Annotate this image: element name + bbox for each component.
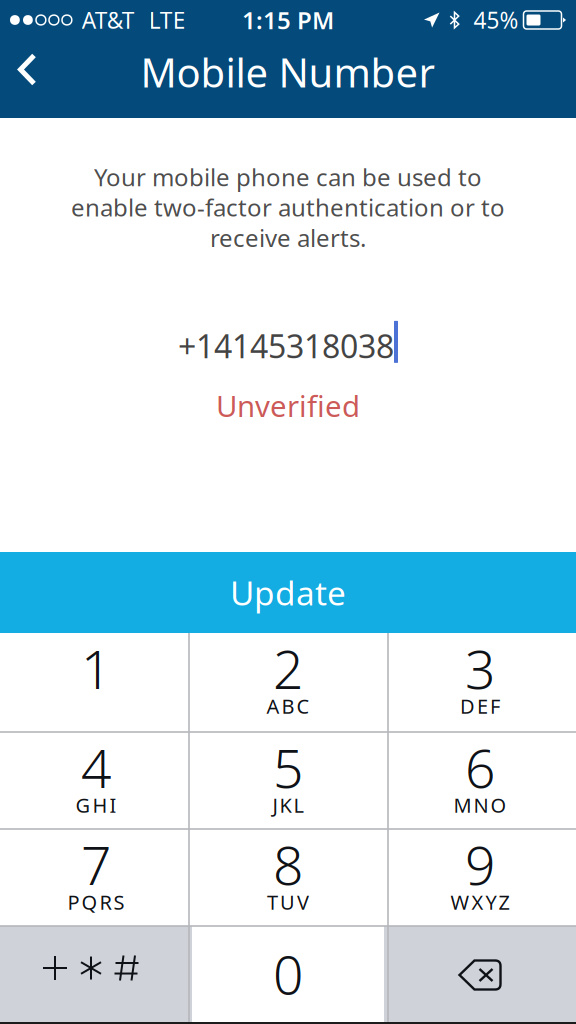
staticText: receive alerts.: [210, 222, 366, 254]
staticText: 1:15 PM: [242, 4, 334, 36]
staticText: ABC: [266, 693, 309, 719]
staticText: JKL: [272, 792, 303, 818]
staticText: 9: [465, 829, 495, 900]
button[interactable]: 1: [0, 633, 192, 732]
staticText: MNO: [453, 792, 506, 818]
staticText: 7: [81, 829, 111, 900]
staticText: PQRS: [67, 889, 124, 915]
staticText: DEF: [460, 693, 500, 719]
button[interactable]: Update: [0, 552, 576, 633]
staticText: Your mobile phone can be used to: [94, 161, 482, 193]
staticText: 45%: [473, 5, 518, 35]
staticText: Unverified: [216, 386, 360, 425]
button[interactable]: 7: [0, 829, 192, 926]
staticText: GHI: [75, 792, 116, 818]
button[interactable]: Star, plus, hash symbols: [0, 926, 192, 1024]
staticText: 0: [273, 938, 303, 1009]
staticText: 6: [465, 732, 495, 803]
staticText: 5: [273, 732, 303, 803]
button[interactable]: 4: [0, 732, 192, 829]
staticText: TUV: [267, 889, 309, 915]
staticText: LTE: [149, 5, 186, 35]
button[interactable]: Delete: [384, 926, 576, 1024]
staticText: Update: [230, 570, 346, 615]
button[interactable]: Back: [0, 40, 55, 118]
staticText: Mobile Number: [140, 45, 435, 98]
button[interactable]: 8: [192, 829, 384, 926]
staticText: AT&T: [82, 5, 135, 35]
button[interactable]: 6: [384, 732, 576, 829]
button[interactable]: 5: [192, 732, 384, 829]
button[interactable]: 0: [192, 926, 384, 1024]
staticText: 3: [465, 633, 495, 704]
staticText: WXYZ: [450, 889, 509, 915]
button[interactable]: 2: [192, 633, 384, 732]
staticText: +14145318038: [178, 325, 394, 367]
staticText: enable two-factor authentication or to: [71, 191, 505, 223]
staticText: 2: [273, 633, 303, 704]
staticText: 1: [81, 633, 111, 704]
button[interactable]: 3: [384, 633, 576, 732]
staticText: 4: [81, 732, 111, 803]
button[interactable]: 9: [384, 829, 576, 926]
staticText: 8: [273, 829, 303, 900]
